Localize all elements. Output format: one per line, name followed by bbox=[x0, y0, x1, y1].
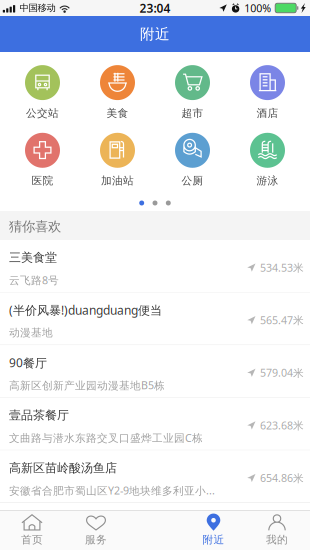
button[interactable]: 壹品茶餐厅 bbox=[0, 398, 310, 450]
button[interactable]: 公交站 bbox=[6, 65, 78, 119]
staticText: 公厕 bbox=[181, 174, 203, 187]
staticText: 623.68米 bbox=[260, 418, 304, 432]
button[interactable]: 医院 bbox=[6, 133, 78, 187]
staticText: 附近 bbox=[202, 533, 224, 546]
staticText: 酒店 bbox=[256, 106, 278, 120]
button[interactable]: 三美食堂 bbox=[0, 240, 310, 292]
staticText: 西城路 bbox=[9, 536, 42, 549]
staticText: 首页 bbox=[21, 533, 43, 546]
staticText: 附近 bbox=[140, 25, 170, 43]
button[interactable]: (半价风暴!)duangduang便当 bbox=[0, 293, 310, 345]
staticText: 云飞路8号 bbox=[9, 273, 59, 287]
staticText: 游泳 bbox=[256, 174, 278, 187]
staticText: 文曲路与潜水东路交叉口盛烨工业园C栋 bbox=[9, 431, 203, 445]
staticText: 栖巢咖啡(动漫园店) bbox=[9, 512, 113, 528]
staticText: 90餐厅 bbox=[9, 355, 47, 371]
staticText: 高新区创新产业园动漫基地B5栋 bbox=[9, 378, 165, 392]
staticText: 医院 bbox=[31, 174, 53, 187]
staticText: 654.86米 bbox=[260, 471, 304, 485]
staticText: 534.53米 bbox=[260, 260, 304, 275]
button[interactable]: 美食 bbox=[81, 65, 153, 119]
staticText: 安徽省合肥市蜀山区Y2-9地块维多利亚小... bbox=[9, 483, 215, 497]
button[interactable]: 加油站 bbox=[81, 133, 153, 187]
button[interactable]: 游泳 bbox=[231, 133, 303, 187]
staticText: 美食 bbox=[106, 106, 128, 120]
button[interactable]: 我的 bbox=[246, 512, 308, 546]
button[interactable]: 酒店 bbox=[231, 65, 303, 119]
button[interactable]: 首页 bbox=[1, 512, 63, 546]
staticText: 公交站 bbox=[26, 106, 59, 120]
staticText: (半价风暴!)duangduang便当 bbox=[9, 302, 162, 318]
staticText: 加油站 bbox=[101, 174, 134, 187]
staticText: 猜你喜欢 bbox=[9, 218, 61, 235]
button[interactable]: 附近 bbox=[182, 512, 244, 546]
staticText: 服务 bbox=[85, 533, 107, 546]
staticText: 565.47米 bbox=[260, 313, 304, 327]
button[interactable]: 服务 bbox=[65, 512, 127, 546]
button[interactable]: 90餐厅 bbox=[0, 345, 310, 397]
staticText: 579.04米 bbox=[260, 366, 304, 380]
staticText: 动漫基地 bbox=[9, 326, 53, 339]
staticText: 高新区苗岭酸汤鱼店 bbox=[9, 460, 117, 475]
button[interactable]: 高新区苗岭酸汤鱼店 bbox=[0, 450, 310, 502]
staticText: 701.33米 bbox=[260, 523, 304, 538]
staticText: 壹品茶餐厅 bbox=[9, 408, 69, 423]
button[interactable]: 超市 bbox=[156, 65, 228, 119]
staticText: 我的 bbox=[266, 533, 288, 546]
staticText: 三美食堂 bbox=[9, 250, 57, 265]
staticText: 23:04 bbox=[139, 0, 170, 16]
staticText: 100% bbox=[244, 1, 271, 15]
staticText: 超市 bbox=[181, 106, 203, 120]
button[interactable]: 栖巢咖啡(动漫园店) bbox=[0, 503, 310, 550]
staticText: 中国移动 bbox=[19, 2, 55, 14]
button[interactable]: 公厕 bbox=[156, 133, 228, 187]
